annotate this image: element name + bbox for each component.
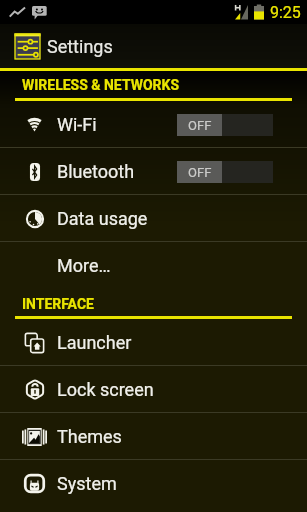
button[interactable]: Wi-Fi [0,101,307,148]
staticText: Launcher [57,332,132,353]
staticText: 9:25 [270,3,301,22]
staticText: OFF [188,118,212,133]
button[interactable]: OFF [177,114,273,136]
button[interactable]: Launcher [0,319,307,366]
button[interactable]: Bluetooth [0,148,307,195]
button[interactable]: Themes [0,413,307,460]
button[interactable]: System [0,460,307,507]
staticText: Wi-Fi [57,114,97,135]
staticText: INTERFACE [22,296,94,312]
staticText: Data usage [57,208,148,229]
staticText: WIRELESS & NETWORKS [22,77,179,93]
staticText: Lock screen [57,379,154,400]
button[interactable]: More… [0,242,307,289]
button[interactable]: Data usage [0,195,307,242]
staticText: OFF [188,165,212,180]
staticText: Bluetooth [57,161,135,182]
staticText: More… [57,255,111,276]
button[interactable]: Settings [0,24,307,68]
button[interactable]: OFF [177,161,273,183]
staticText: Themes [57,426,122,447]
staticText: System [57,473,117,494]
button[interactable]: Lock screen [0,366,307,413]
staticText: Settings [47,36,113,57]
